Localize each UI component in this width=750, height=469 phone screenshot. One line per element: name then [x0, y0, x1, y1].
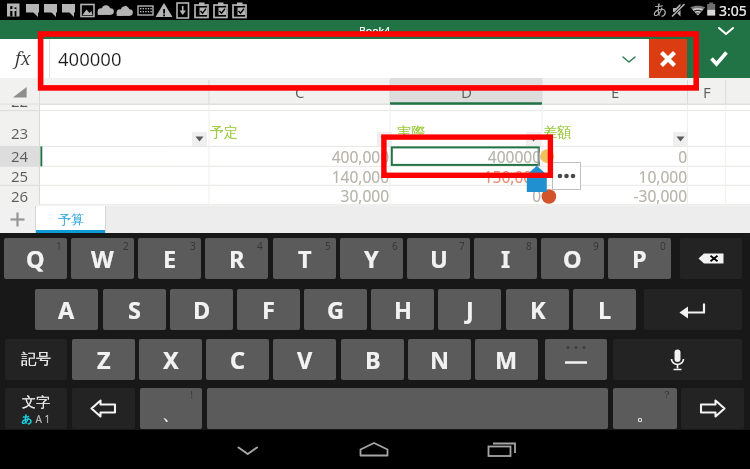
button[interactable]: Expand formula	[609, 39, 649, 78]
button[interactable]: U	[407, 238, 470, 279]
button[interactable]: Filter	[192, 132, 207, 146]
button[interactable]: Q	[4, 238, 67, 279]
staticText: J	[466, 294, 474, 326]
button[interactable]: H	[371, 289, 434, 330]
staticText: ！	[187, 388, 197, 401]
button[interactable]: J	[438, 289, 501, 330]
staticText: 4	[257, 239, 263, 253]
button[interactable]: Filter	[377, 132, 392, 146]
staticText: T	[298, 243, 312, 275]
button[interactable]: N	[408, 339, 471, 380]
staticText: 0	[660, 239, 666, 253]
button[interactable]: Filter	[526, 132, 541, 146]
button[interactable]: 予算	[36, 206, 105, 233]
staticText: 6	[392, 239, 398, 253]
button[interactable]: W	[71, 238, 134, 279]
button[interactable]: L	[573, 289, 636, 330]
button[interactable]: More options	[552, 162, 581, 190]
button[interactable]: Backspace	[680, 238, 742, 279]
button[interactable]: R	[205, 238, 268, 279]
staticText: U	[430, 243, 448, 275]
button[interactable]: T	[273, 238, 336, 279]
button[interactable]: B	[341, 339, 404, 380]
button[interactable]: A	[35, 289, 98, 330]
staticText: S	[128, 294, 141, 326]
button[interactable]: Cancel	[649, 39, 687, 78]
staticText: 3:05	[719, 1, 747, 20]
staticText: D	[461, 82, 472, 102]
button[interactable]: Y	[340, 238, 403, 279]
button[interactable]: Move right	[681, 388, 744, 429]
staticText: O	[563, 243, 582, 275]
button[interactable]: S	[103, 289, 166, 330]
button[interactable]: Back	[228, 430, 270, 469]
staticText: P	[632, 243, 647, 275]
staticText: 記号	[21, 350, 51, 369]
staticText: M	[495, 344, 518, 376]
staticText: Y	[364, 243, 379, 275]
staticText: 0	[678, 146, 687, 166]
button[interactable]: Dash	[545, 339, 607, 380]
button[interactable]: P	[608, 238, 671, 279]
staticText: 150,000	[483, 166, 541, 185]
staticText: 24	[11, 146, 29, 166]
staticText: 0	[532, 185, 541, 204]
staticText: 400000	[487, 146, 541, 166]
staticText: V	[297, 344, 313, 376]
staticText: C	[295, 82, 305, 102]
button[interactable]: Recent apps	[481, 430, 523, 469]
staticText: あ	[653, 1, 668, 19]
button[interactable]: K	[506, 289, 569, 330]
staticText: 予算	[58, 211, 84, 227]
staticText: Book4	[359, 24, 391, 38]
button[interactable]: O	[541, 238, 604, 279]
button[interactable]: G	[304, 289, 367, 330]
button[interactable]: Enter	[644, 289, 742, 330]
button[interactable]: M	[475, 339, 538, 380]
staticText: 文字	[22, 394, 50, 412]
staticText: 10,000	[638, 166, 687, 185]
button[interactable]: X	[139, 339, 202, 380]
staticText: H	[394, 294, 412, 326]
staticText: 400000	[58, 46, 122, 71]
staticText: K	[530, 294, 546, 326]
button[interactable]: Expand toolbar	[702, 20, 750, 39]
button[interactable]: F	[237, 289, 300, 330]
staticText: 26	[11, 186, 29, 206]
staticText: E	[611, 82, 620, 102]
button[interactable]: E	[138, 238, 201, 279]
button[interactable]: Comma	[140, 388, 202, 429]
button[interactable]: F	[688, 78, 726, 105]
staticText: L	[598, 294, 612, 326]
staticText: 2	[123, 239, 129, 253]
staticText: 予定	[210, 124, 238, 142]
button[interactable]: E	[542, 78, 688, 105]
button[interactable]: C	[206, 339, 269, 380]
staticText: A	[58, 294, 75, 326]
button[interactable]: I	[474, 238, 537, 279]
staticText: A 1	[33, 412, 51, 426]
staticText: G	[327, 294, 345, 326]
button[interactable]: Home	[353, 430, 395, 469]
button[interactable]: Move left	[72, 388, 135, 429]
button[interactable]: D	[170, 289, 233, 330]
button[interactable]: D	[390, 78, 542, 105]
staticText: 140,000	[331, 166, 389, 185]
button[interactable]: Accept	[687, 39, 750, 78]
button[interactable]: 記号	[5, 339, 67, 380]
staticText: 25	[11, 166, 29, 186]
staticText: I	[501, 243, 511, 275]
staticText: 3	[190, 239, 196, 253]
staticText: Q	[26, 243, 45, 275]
staticText: 22	[11, 105, 29, 111]
button[interactable]: C	[209, 78, 390, 105]
button[interactable]: Add sheet	[0, 206, 35, 233]
button[interactable]: Change input mode	[5, 388, 67, 429]
button[interactable]: Voice input	[613, 339, 742, 380]
button[interactable]: Period	[613, 388, 677, 429]
button[interactable]: Z	[72, 339, 135, 380]
staticText: F	[262, 294, 275, 326]
button[interactable]: Filter	[673, 132, 688, 146]
button[interactable]: V	[273, 339, 336, 380]
